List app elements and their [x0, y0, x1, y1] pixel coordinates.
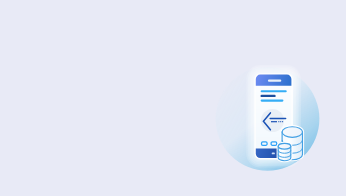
button[interactable]: Data backup and restore illustration	[0, 0, 346, 196]
